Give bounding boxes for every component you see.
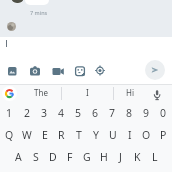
button[interactable]: O	[138, 124, 155, 145]
staticText: J	[119, 150, 122, 164]
staticText: Y	[93, 128, 99, 142]
button[interactable]: Hi	[114, 85, 146, 100]
staticText: 4	[58, 106, 65, 120]
button[interactable]: 7	[104, 102, 121, 123]
button[interactable]	[72, 63, 88, 79]
button[interactable]: 4	[53, 102, 70, 123]
button[interactable]: P	[155, 124, 172, 145]
staticText: K	[134, 150, 141, 164]
staticText: O	[142, 128, 151, 142]
button[interactable]: 5	[70, 102, 87, 123]
staticText: I	[86, 87, 89, 98]
button[interactable]	[2, 86, 17, 101]
staticText: 1	[6, 106, 13, 120]
staticText: Hi	[126, 87, 134, 98]
staticText: R	[58, 128, 65, 142]
button[interactable]	[4, 63, 20, 79]
button[interactable]: J	[112, 146, 129, 167]
staticText: T	[76, 128, 82, 142]
staticText: G	[83, 150, 91, 164]
staticText: Q	[5, 128, 14, 142]
staticText: 7	[109, 106, 116, 120]
staticText: 0	[160, 106, 167, 120]
staticText: 7 mins	[30, 9, 48, 16]
button[interactable]: W	[18, 124, 36, 145]
button[interactable]: Q	[0, 124, 18, 145]
button[interactable]: A	[9, 146, 27, 167]
button[interactable]	[150, 88, 163, 101]
button[interactable]: 8	[121, 102, 138, 123]
button[interactable]: 1	[0, 102, 18, 123]
button[interactable]	[145, 60, 165, 80]
staticText: 2	[24, 106, 31, 120]
button[interactable]: Y	[87, 124, 104, 145]
staticText: The	[34, 87, 48, 98]
button[interactable]: 0	[155, 102, 172, 123]
button[interactable]: The	[20, 85, 62, 100]
button[interactable]: F	[61, 146, 78, 167]
button[interactable]: 6	[87, 102, 104, 123]
staticText: I	[128, 128, 132, 142]
button[interactable]: S	[27, 146, 44, 167]
staticText: 6	[92, 106, 99, 120]
button[interactable]	[92, 63, 108, 79]
staticText: 8	[126, 106, 133, 120]
staticText: S	[33, 150, 39, 164]
staticText: F	[67, 150, 73, 164]
staticText: 5	[75, 106, 82, 120]
button[interactable]	[27, 63, 43, 79]
button[interactable]: R	[53, 124, 70, 145]
button[interactable]: H	[95, 146, 112, 167]
staticText: E	[42, 128, 48, 142]
staticText: L	[152, 150, 158, 164]
button[interactable]: K	[129, 146, 146, 167]
button[interactable]: 2	[18, 102, 36, 123]
staticText: P	[160, 128, 167, 142]
staticText: 3	[41, 106, 48, 120]
staticText: A	[15, 150, 22, 164]
button[interactable]: I	[62, 85, 112, 100]
staticText: 9	[143, 106, 150, 120]
button[interactable]: L	[146, 146, 163, 167]
button[interactable]: D	[44, 146, 61, 167]
staticText: H	[100, 150, 108, 164]
button[interactable]: E	[36, 124, 53, 145]
button[interactable]: U	[104, 124, 121, 145]
button[interactable]: T	[70, 124, 87, 145]
staticText: W	[22, 128, 32, 142]
button[interactable]: 3	[36, 102, 53, 123]
staticText: D	[49, 150, 57, 164]
button[interactable]: 9	[138, 102, 155, 123]
button[interactable]: I	[121, 124, 138, 145]
button[interactable]	[50, 63, 66, 79]
staticText: U	[109, 128, 117, 142]
button[interactable]: G	[78, 146, 95, 167]
